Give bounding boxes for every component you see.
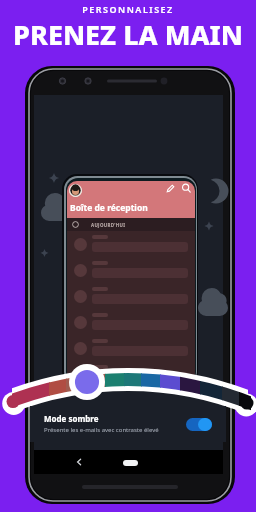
button[interactable] xyxy=(67,283,195,309)
staticText: AUJOURD'HUI xyxy=(91,222,126,228)
staticText: Boîte de réception xyxy=(70,202,148,214)
button[interactable] xyxy=(67,231,195,257)
button[interactable] xyxy=(67,257,195,283)
button[interactable]: Back xyxy=(34,450,223,474)
staticText: PERSONNALISEZ xyxy=(82,3,174,15)
button[interactable]: Home xyxy=(123,460,138,466)
button[interactable]: Back xyxy=(74,457,84,467)
button[interactable] xyxy=(67,361,195,383)
button[interactable]: Compose xyxy=(165,183,176,194)
staticText: Mode sombre xyxy=(44,413,99,424)
staticText: PRENEZ LA MAIN xyxy=(13,16,243,53)
button[interactable]: Search xyxy=(181,183,192,194)
button[interactable]: Account xyxy=(69,184,82,197)
button[interactable] xyxy=(67,335,195,361)
button[interactable] xyxy=(67,309,195,335)
staticText: Présente les e-mails avec contraste élev… xyxy=(44,426,159,434)
button[interactable]: Selected colour xyxy=(69,364,105,400)
button[interactable]: Mode sombre xyxy=(30,406,226,442)
